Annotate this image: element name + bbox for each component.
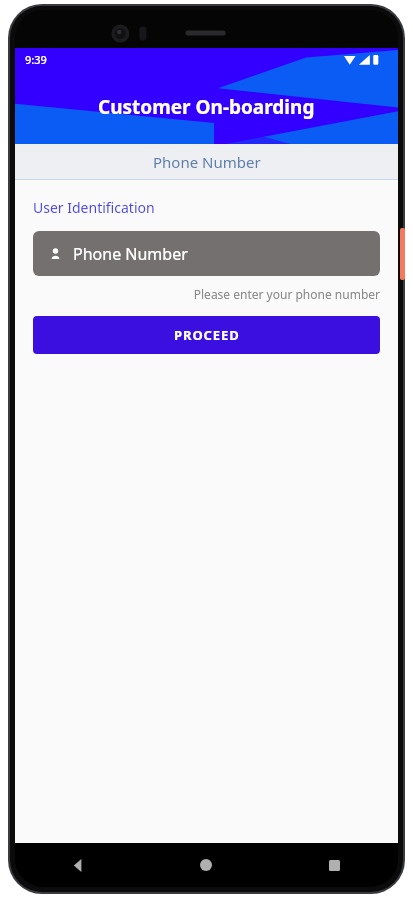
staticText: Phone Number	[73, 243, 188, 265]
button[interactable]: Phone Number	[33, 231, 380, 276]
staticText: 9:39	[25, 52, 47, 67]
staticText: Please enter your phone number	[33, 286, 380, 302]
staticText: Customer On-boarding	[98, 94, 315, 120]
staticText: User Identification	[33, 198, 155, 217]
button[interactable]: PROCEED	[33, 316, 380, 354]
button[interactable]: Back	[15, 843, 142, 887]
staticText: PROCEED	[174, 326, 240, 344]
button[interactable]: Phone Number	[15, 144, 398, 180]
button[interactable]: Recents	[270, 843, 398, 887]
staticText: Phone Number	[153, 152, 261, 172]
button[interactable]: Home	[142, 843, 270, 887]
